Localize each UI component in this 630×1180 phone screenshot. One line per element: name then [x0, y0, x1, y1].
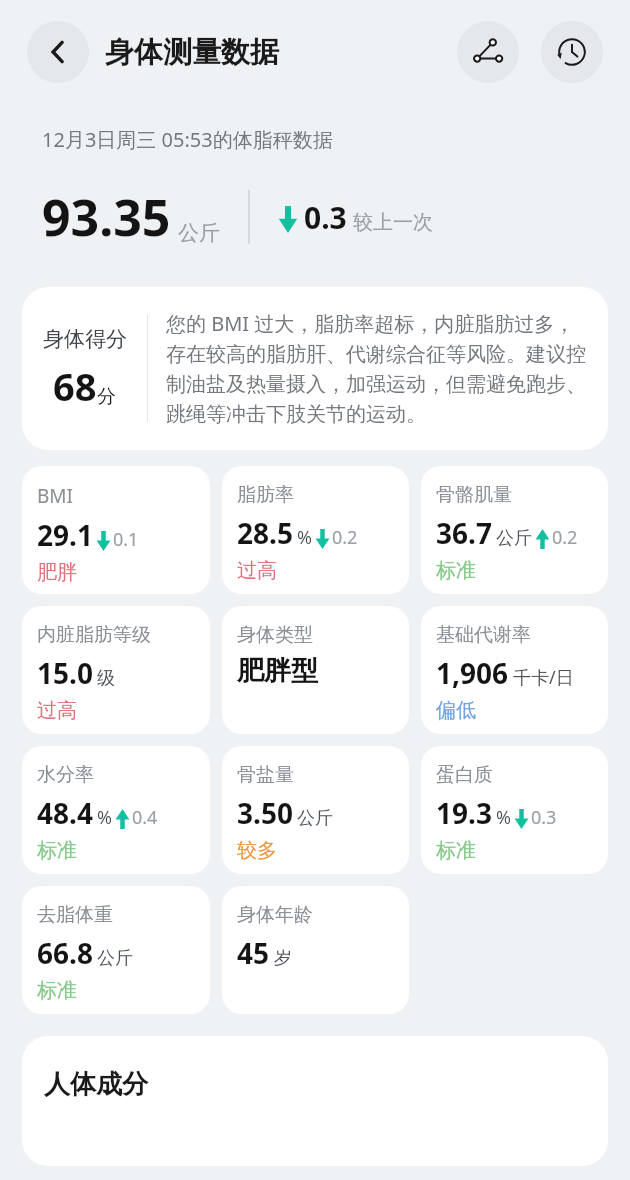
staticText: 93.35 [42, 183, 171, 251]
staticText: 0.2 [552, 525, 578, 550]
staticText: 标准 [37, 978, 77, 1003]
staticText: 68 [53, 360, 97, 412]
staticText: 15.0 [37, 654, 93, 692]
staticText: 骨骼肌量 [436, 483, 512, 507]
staticText: 29.1 [37, 516, 93, 554]
staticText: 19.3 [436, 794, 492, 832]
button[interactable]: 身体得分 [22, 287, 608, 450]
button[interactable]: 蛋白质 [421, 746, 608, 874]
staticText: 45 [237, 934, 270, 972]
staticText: 基础代谢率 [436, 623, 531, 647]
button[interactable]: BMI [22, 466, 210, 594]
staticText: % [297, 525, 312, 550]
staticText: 偏低 [436, 698, 476, 723]
button[interactable]: Back [27, 21, 89, 83]
staticText: 身体年龄 [237, 903, 313, 927]
staticText: 岁 [274, 947, 292, 970]
staticText: 内脏脂肪等级 [37, 623, 151, 647]
staticText: 0.4 [132, 805, 158, 830]
staticText: 肥胖 [37, 560, 77, 585]
button[interactable]: 去脂体重 [22, 886, 210, 1014]
button[interactable]: 身体类型 [222, 606, 409, 734]
staticText: 12月3日周三 05:53的体脂秤数据 [42, 126, 333, 153]
staticText: 公斤 [496, 527, 532, 550]
staticText: 过高 [237, 558, 277, 583]
staticText: 您的 BMI 过大，脂肪率超标，内脏脂肪过多，存在较高的脂肪肝、代谢综合征等风险… [166, 310, 592, 427]
button[interactable]: 基础代谢率 [421, 606, 608, 734]
staticText: 去脂体重 [37, 903, 113, 927]
staticText: % [496, 805, 511, 830]
staticText: 骨盐量 [237, 763, 294, 787]
button[interactable]: 内脏脂肪等级 [22, 606, 210, 734]
staticText: 公斤 [97, 947, 133, 970]
staticText: 水分率 [37, 763, 94, 787]
staticText: 蛋白质 [436, 763, 493, 787]
button[interactable]: History [541, 21, 603, 83]
staticText: 千卡/日 [513, 665, 574, 690]
staticText: 48.4 [37, 794, 93, 832]
staticText: 36.7 [436, 514, 492, 552]
staticText: 标准 [436, 558, 476, 583]
staticText: 0.3 [531, 805, 557, 830]
staticText: 身体类型 [237, 623, 313, 647]
button[interactable]: 水分率 [22, 746, 210, 874]
staticText: 身体得分 [43, 326, 127, 352]
staticText: % [97, 805, 112, 830]
staticText: 分 [97, 385, 116, 409]
staticText: 较多 [237, 838, 277, 863]
staticText: 脂肪率 [237, 483, 294, 507]
staticText: 标准 [37, 838, 77, 863]
staticText: BMI [37, 483, 74, 509]
button[interactable]: 脂肪率 [222, 466, 409, 594]
staticText: 公斤 [178, 220, 220, 246]
button[interactable]: 骨盐量 [222, 746, 409, 874]
staticText: 身体测量数据 [105, 34, 279, 71]
staticText: 过高 [37, 698, 77, 723]
staticText: 肥胖型 [237, 654, 318, 688]
staticText: 0.1 [113, 527, 139, 552]
button[interactable]: Share [457, 21, 519, 83]
staticText: 66.8 [37, 934, 93, 972]
staticText: 标准 [436, 838, 476, 863]
staticText: 公斤 [297, 807, 333, 830]
staticText: 级 [97, 667, 115, 690]
staticText: 1,906 [436, 654, 509, 692]
button[interactable]: 人体成分 [22, 1036, 608, 1166]
button[interactable]: 身体年龄 [222, 886, 409, 1014]
staticText: 3.50 [237, 794, 293, 832]
staticText: 0.3 [304, 197, 347, 238]
staticText: 28.5 [237, 514, 293, 552]
staticText: 较上一次 [353, 210, 433, 235]
staticText: 0.2 [332, 525, 358, 550]
staticText: 人体成分 [44, 1068, 148, 1101]
button[interactable]: 骨骼肌量 [421, 466, 608, 594]
